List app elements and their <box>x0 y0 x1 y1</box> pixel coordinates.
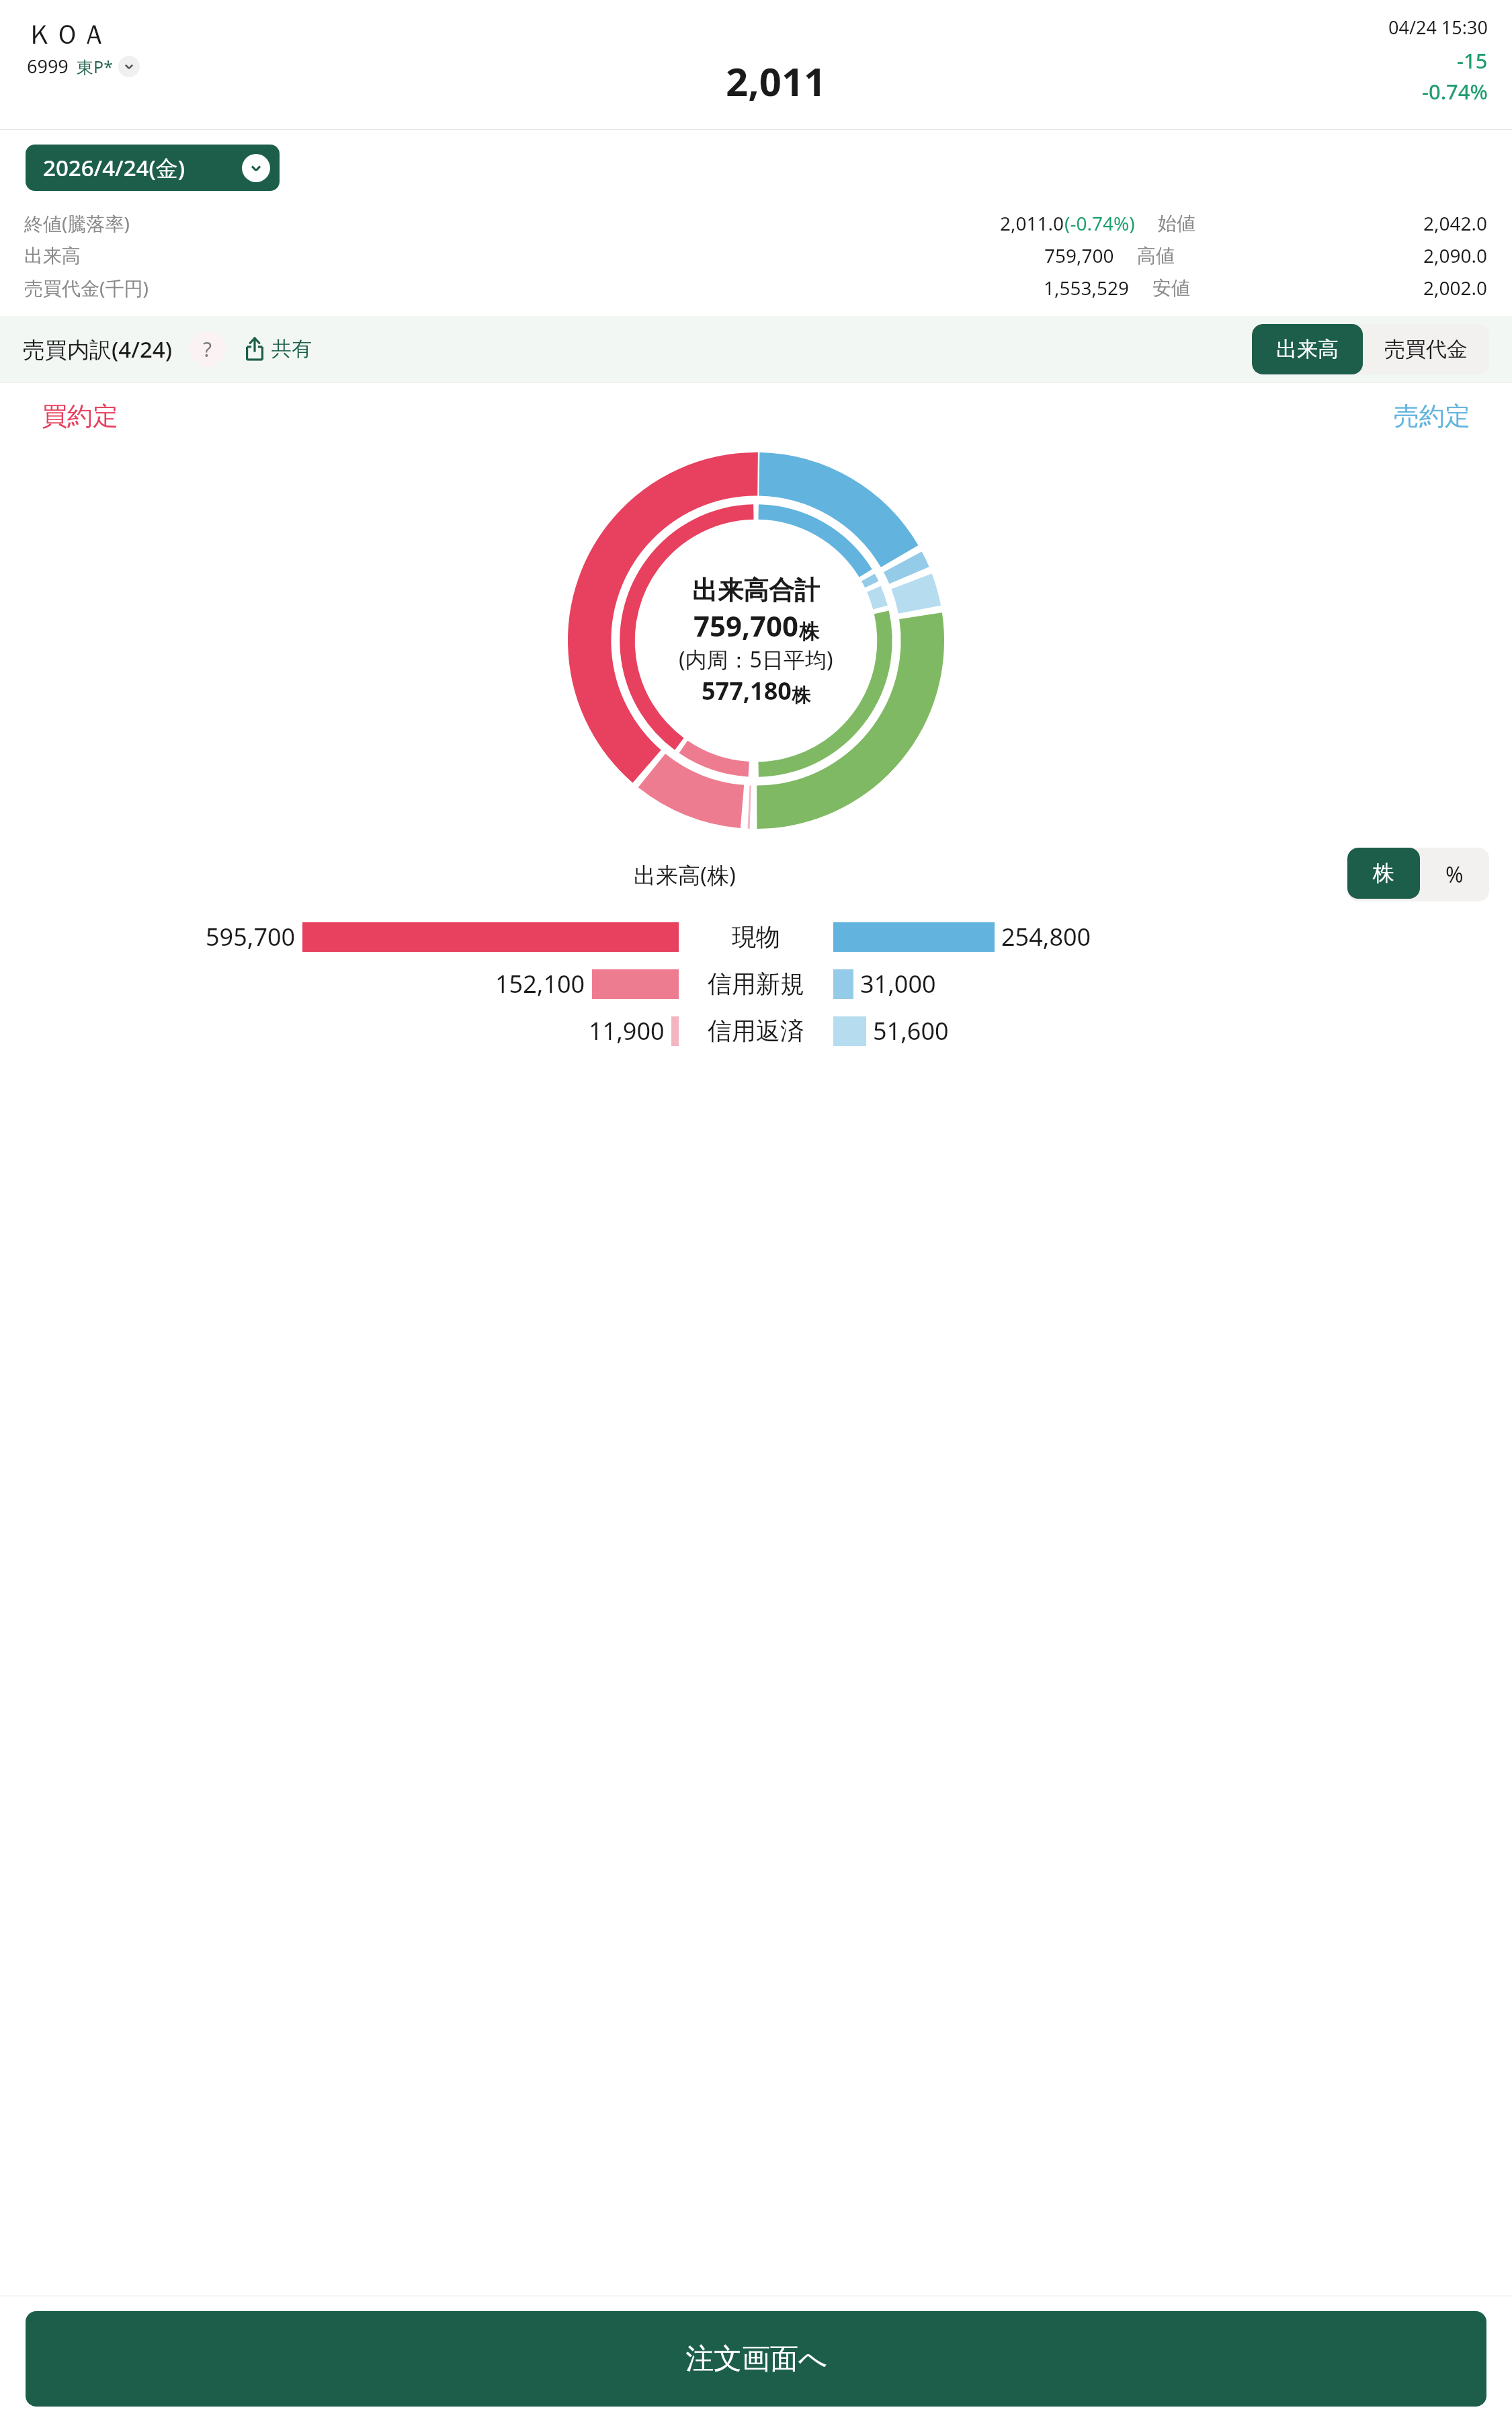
staticText: 2,090.0 <box>1423 243 1488 268</box>
staticText: 信用新規 <box>708 969 804 999</box>
staticText: % <box>1445 860 1464 889</box>
button[interactable]: % <box>1420 848 1489 901</box>
button[interactable]: 共有 <box>238 332 316 366</box>
staticText: 終値(騰落率) <box>24 210 130 236</box>
staticText: 04/24 15:30 <box>1388 15 1488 40</box>
staticText: 6999 <box>27 54 69 79</box>
staticText: -0.74% <box>1422 77 1488 106</box>
staticText: 始値 <box>1158 212 1195 235</box>
staticText: 東P* <box>77 55 113 78</box>
staticText: 出来高 <box>24 244 81 268</box>
button[interactable]: 2026/4/24(金) <box>26 145 280 191</box>
staticText: 売約定 <box>1394 400 1470 432</box>
staticText: 安値 <box>1152 276 1190 300</box>
staticText: 信用返済 <box>708 1016 804 1046</box>
staticText: 2026/4/24(金) <box>43 153 185 183</box>
button[interactable]: 出来高 <box>1252 324 1363 374</box>
staticText: 152,100 <box>495 967 585 1000</box>
staticText: 売買代金 <box>1384 336 1468 362</box>
staticText: 出来高合計 <box>692 574 820 606</box>
staticText: ＫＯＡ <box>27 17 108 51</box>
staticText: 1,553,529 <box>1044 275 1130 300</box>
staticText: 11,900 <box>589 1014 665 1047</box>
staticText: 254,800 <box>1001 920 1091 953</box>
staticText: 2,011.0 <box>1000 210 1064 236</box>
staticText: 共有 <box>271 336 312 362</box>
staticText: 31,000 <box>860 967 936 1000</box>
staticText: (-0.74%) <box>1064 210 1135 236</box>
staticText: 595,700 <box>206 920 296 953</box>
staticText: ? <box>203 335 212 363</box>
staticText: 出来高(株) <box>634 860 736 890</box>
staticText: 株 <box>799 619 819 645</box>
staticText: 2,042.0 <box>1423 210 1488 236</box>
button[interactable]: Market menu <box>118 56 140 77</box>
staticText: 買約定 <box>42 400 118 432</box>
button[interactable]: 株 <box>1347 848 1420 899</box>
staticText: 売買内訳(4/24) <box>23 334 172 364</box>
staticText: 51,600 <box>873 1014 949 1047</box>
staticText: 577,180 <box>702 674 792 707</box>
button[interactable]: 11,900 <box>0 1012 1512 1049</box>
staticText: 高値 <box>1137 244 1175 268</box>
staticText: (内周：5日平均) <box>679 645 833 674</box>
staticText: 2,002.0 <box>1423 275 1488 300</box>
button[interactable]: 152,100 <box>0 965 1512 1002</box>
button[interactable]: 売買代金 <box>1363 324 1489 374</box>
staticText: 出来高 <box>1276 336 1339 362</box>
staticText: 現物 <box>732 922 780 952</box>
button[interactable]: 595,700 <box>0 918 1512 955</box>
staticText: 759,700 <box>694 606 799 645</box>
staticText: 売買代金(千円) <box>24 275 149 300</box>
staticText: 株 <box>792 684 810 707</box>
staticText: 2,011 <box>726 54 827 108</box>
button[interactable]: 注文画面へ <box>26 2311 1486 2407</box>
staticText: 株 <box>1373 860 1394 887</box>
button[interactable]: Help <box>190 331 226 367</box>
staticText: 注文画面へ <box>685 2341 827 2377</box>
staticText: 759,700 <box>1044 243 1114 268</box>
staticText: -15 <box>1457 46 1488 75</box>
